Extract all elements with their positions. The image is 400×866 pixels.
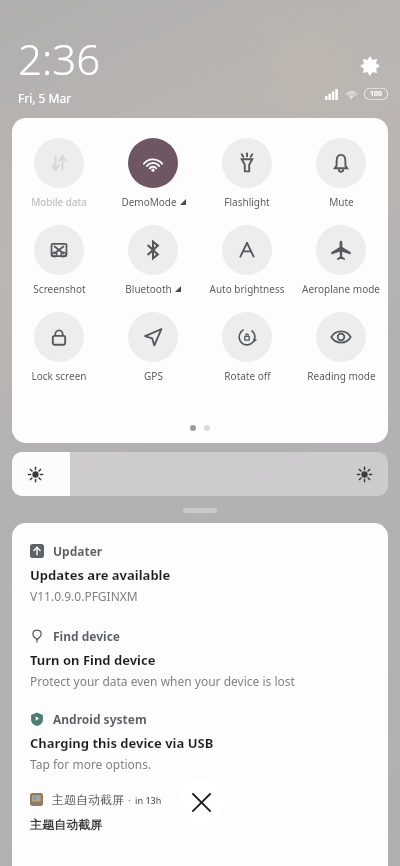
button[interactable]: Reading mode xyxy=(294,310,388,385)
staticText: 100 xyxy=(370,89,383,99)
button[interactable]: Bluetooth xyxy=(106,223,200,298)
button[interactable]: Mute xyxy=(294,136,388,211)
button[interactable]: Updater xyxy=(30,543,370,604)
staticText: V11.0.9.0.PFGINXM xyxy=(30,588,138,604)
button[interactable]: Flashlight xyxy=(200,136,294,211)
button[interactable]: Screenshot xyxy=(12,223,106,298)
staticText: Turn on Find device xyxy=(30,651,156,669)
button[interactable]: Rotate off xyxy=(200,310,294,385)
button[interactable]: Settings xyxy=(354,50,386,82)
button[interactable]: Lock screen xyxy=(12,310,106,385)
button[interactable]: Auto brightness xyxy=(200,223,294,298)
staticText: Find device xyxy=(53,628,120,644)
staticText: 主题自动截屏 xyxy=(52,792,124,807)
button[interactable]: Mobile data xyxy=(12,136,106,211)
staticText: DemoMode xyxy=(121,195,177,209)
staticText: in 13h xyxy=(135,794,162,806)
button[interactable]: Brightness xyxy=(12,452,388,496)
staticText: Mobile data xyxy=(31,195,87,209)
staticText: GPS xyxy=(144,369,163,383)
staticText: Tap for more options. xyxy=(30,756,152,772)
button[interactable]: Find device xyxy=(30,628,370,689)
button[interactable]: Close notifications xyxy=(178,779,224,825)
staticText: Charging this device via USB xyxy=(30,734,214,752)
button[interactable]: Android system xyxy=(30,711,370,772)
staticText: Bluetooth xyxy=(125,282,172,296)
staticText: Reading mode xyxy=(307,369,376,383)
staticText: Lock screen xyxy=(31,369,87,383)
staticText: Auto brightness xyxy=(209,282,285,296)
staticText: Protect your data even when your device … xyxy=(30,673,295,689)
staticText: 2:36 xyxy=(18,30,101,87)
staticText: Screenshot xyxy=(33,282,86,296)
staticText: · xyxy=(128,792,131,807)
staticText: Aeroplane mode xyxy=(302,282,380,296)
staticText: Flashlight xyxy=(224,195,270,209)
staticText: Updates are available xyxy=(30,566,171,584)
button[interactable]: DemoMode xyxy=(106,136,200,211)
staticText: Fri, 5 Mar xyxy=(18,90,72,106)
staticText: Updater xyxy=(53,543,103,559)
button[interactable]: Aeroplane mode xyxy=(294,223,388,298)
staticText: 主题自动截屏 xyxy=(30,817,102,832)
staticText: Rotate off xyxy=(224,369,271,383)
staticText: Mute xyxy=(329,195,354,209)
staticText: Android system xyxy=(53,711,147,727)
button[interactable]: GPS xyxy=(106,310,200,385)
